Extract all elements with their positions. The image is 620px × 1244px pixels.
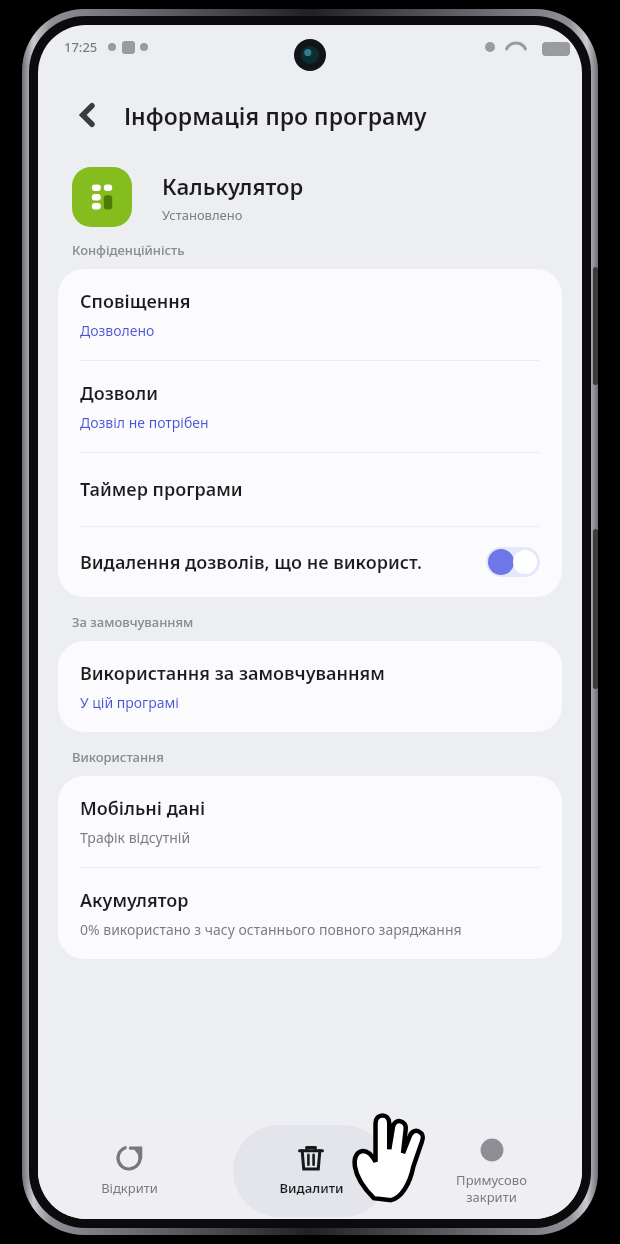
button[interactable]: Видалити: [233, 1125, 389, 1217]
staticText: Мобільні дані: [80, 796, 206, 821]
staticText: Відкрити: [101, 1179, 158, 1197]
staticText: За замовчуванням: [72, 613, 194, 631]
staticText: Видалення дозволів, що не використ.: [80, 550, 422, 575]
staticText: Конфіденційність: [72, 241, 185, 259]
other: Перемикач: [486, 547, 540, 577]
staticText: 0% використано з часу останнього повного…: [80, 920, 462, 939]
other: Видалити: [298, 1145, 324, 1171]
staticText: Сповіщення: [80, 289, 191, 314]
button[interactable]: Примусово закрити: [401, 1123, 582, 1219]
staticText: 17:25: [64, 38, 98, 56]
staticText: Дозволено: [80, 321, 155, 340]
button[interactable]: Назад: [62, 89, 114, 141]
button[interactable]: Дозволи: [58, 361, 562, 452]
button[interactable]: Відкрити: [38, 1123, 220, 1219]
other: Примусово закрити: [479, 1137, 505, 1163]
staticText: Калькулятор: [162, 171, 304, 201]
staticText: Трафік відсутній: [80, 828, 191, 847]
other: Відкрити: [116, 1145, 142, 1171]
button[interactable]: Акумулятор: [58, 868, 562, 959]
staticText: Таймер програми: [80, 477, 243, 502]
button[interactable]: Видалення дозволів, що не використ.: [58, 527, 562, 597]
button[interactable]: Таймер програми: [58, 453, 562, 526]
staticText: Видалити: [279, 1179, 344, 1197]
staticText: Установлено: [162, 206, 243, 224]
staticText: Використання за замовчуванням: [80, 661, 385, 686]
staticText: У цій програмі: [80, 693, 179, 712]
button[interactable]: Використання за замовчуванням: [58, 641, 562, 732]
staticText: Дозволи: [80, 381, 158, 406]
staticText: Дозвіл не потрібен: [80, 413, 209, 432]
staticText: Акумулятор: [80, 888, 189, 913]
staticText: Примусово закрити: [456, 1171, 527, 1206]
staticText: Використання: [72, 748, 164, 766]
button[interactable]: Мобільні дані: [58, 776, 562, 867]
staticText: Інформація про програму: [124, 100, 427, 131]
button[interactable]: Сповіщення: [58, 269, 562, 360]
